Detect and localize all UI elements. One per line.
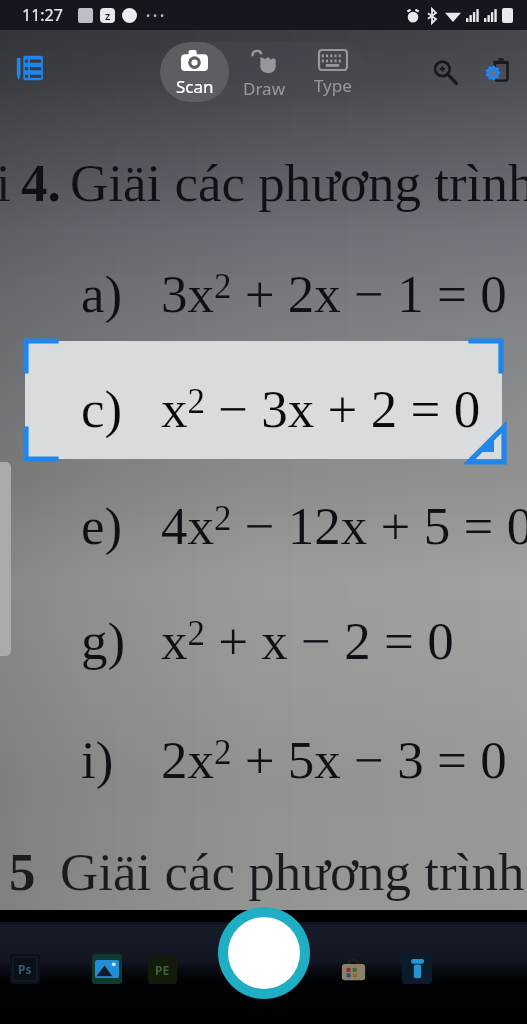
staticText: 2x2 + 5x − 3 = 0 — [161, 731, 507, 790]
staticText: PE — [155, 962, 170, 978]
button[interactable]: Capture — [218, 907, 310, 999]
staticText: Giäi các phương trình — [70, 154, 527, 213]
staticText: Type — [314, 74, 352, 97]
staticText: Draw — [243, 77, 285, 100]
staticText: Scan — [176, 75, 214, 98]
button[interactable]: Settings — [473, 48, 519, 94]
button[interactable]: Flashlight — [394, 946, 440, 992]
staticText: x2 − 3x + 2 = 0 — [161, 380, 481, 439]
staticText: a) — [81, 265, 123, 324]
button[interactable]: History — [8, 46, 52, 90]
staticText: Z — [105, 10, 111, 22]
button[interactable]: Photoshop Express — [139, 946, 185, 992]
staticText: 11:27 — [22, 4, 63, 26]
staticText: g) — [81, 612, 126, 671]
button[interactable]: Type — [298, 42, 367, 102]
button[interactable]: Store — [330, 946, 376, 992]
staticText: x2 + x − 2 = 0 — [161, 612, 454, 671]
button[interactable]: Zoom — [425, 52, 465, 92]
staticText: 5 — [9, 843, 36, 902]
staticText: e) — [81, 497, 123, 556]
staticText: i — [0, 154, 11, 213]
staticText: 4. — [21, 154, 61, 213]
button[interactable]: Draw — [229, 42, 298, 102]
staticText: 3x2 + 2x − 1 = 0 — [161, 265, 507, 324]
staticText: 4x2 − 12x + 5 = 0 — [161, 497, 527, 556]
staticText: i) — [81, 731, 114, 790]
staticText: • • • — [146, 8, 165, 23]
button[interactable]: Gallery — [84, 946, 130, 992]
button[interactable]: Scan — [160, 42, 229, 102]
staticText: Giäi các phương trình — [60, 843, 525, 902]
button[interactable]: Photoshop — [2, 946, 48, 992]
staticText: Ps — [18, 961, 32, 977]
staticText: c) — [81, 380, 123, 439]
